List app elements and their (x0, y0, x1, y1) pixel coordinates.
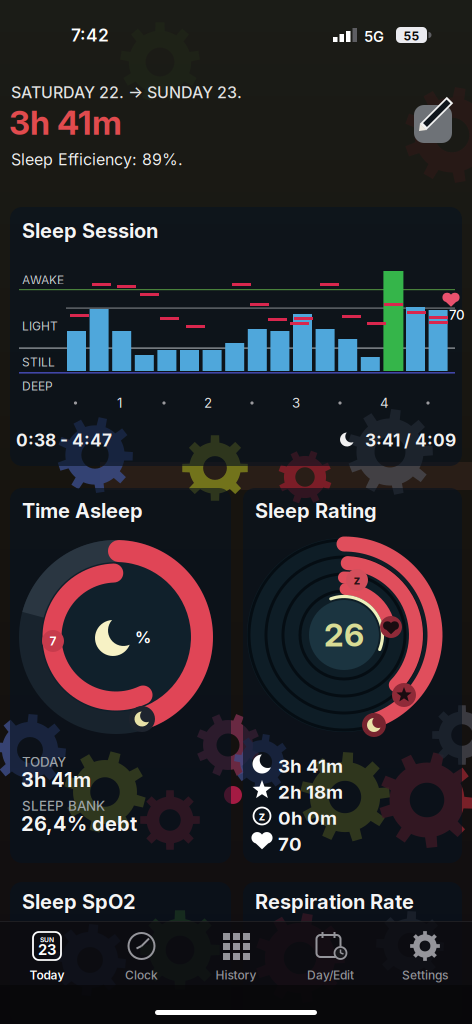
staticText: LIGHT (22, 319, 58, 333)
staticText: Day/Edit (307, 968, 354, 982)
staticText: History (215, 968, 256, 982)
staticText: STILL (22, 355, 55, 369)
staticText: 1 (117, 395, 122, 411)
staticText: z (353, 573, 360, 587)
staticText: 2h 18m (278, 781, 343, 803)
staticText: 2 (204, 395, 212, 411)
staticText: 4 (380, 395, 389, 411)
button[interactable]: Sleep Session (10, 207, 462, 466)
staticText: 26 (324, 616, 364, 654)
staticText: Clock (125, 968, 158, 982)
staticText: SLEEP BANK (22, 798, 105, 814)
button[interactable]: History (196, 930, 276, 990)
staticText: 3 (292, 395, 300, 411)
staticText: z (258, 809, 265, 823)
button[interactable]: Day/Edit (290, 930, 370, 990)
button[interactable]: Sleep SpO2 (10, 882, 231, 1024)
button[interactable]: Respiration Rate (243, 882, 462, 1024)
staticText: 3h 41m (21, 768, 91, 792)
staticText: 5G (364, 28, 384, 45)
staticText: 7 (49, 634, 56, 648)
button[interactable]: Time Asleep (10, 488, 231, 863)
button[interactable]: Sleep Rating (243, 488, 462, 863)
staticText: 7:42 (71, 25, 109, 45)
staticText: 23 (38, 941, 56, 958)
staticText: 55 (403, 29, 419, 43)
staticText: Sleep Session (22, 219, 158, 243)
staticText: Time Asleep (22, 499, 143, 523)
staticText: Sleep Rating (255, 499, 377, 523)
staticText: Today (29, 968, 64, 982)
staticText: 70 (278, 833, 302, 855)
staticText: Sleep Efficiency: 89%. (11, 150, 183, 169)
staticText: 70 (449, 307, 465, 323)
staticText: Settings (402, 968, 448, 982)
staticText: 0:38 - 4:47 (16, 430, 112, 450)
staticText: TODAY (22, 754, 66, 770)
button[interactable]: Clock (101, 930, 181, 990)
staticText: SUN (40, 936, 54, 944)
staticText: Respiration Rate (255, 890, 414, 914)
staticText: AWAKE (22, 273, 64, 287)
staticText: 26,4% debt (21, 812, 137, 836)
staticText: DEEP (22, 379, 53, 393)
staticText: 3h 41m (278, 755, 343, 777)
button[interactable]: Settings (385, 930, 465, 990)
staticText: 0h 0m (278, 807, 337, 829)
button[interactable] (414, 97, 456, 143)
button[interactable]: SUN (7, 930, 87, 990)
staticText: % (135, 628, 151, 647)
staticText: Sleep SpO2 (22, 890, 136, 914)
staticText: SATURDAY 22. → SUNDAY 23. (11, 83, 242, 102)
staticText: 3:41 / 4:09 (365, 430, 456, 450)
staticText: 3h 41m (9, 103, 122, 142)
